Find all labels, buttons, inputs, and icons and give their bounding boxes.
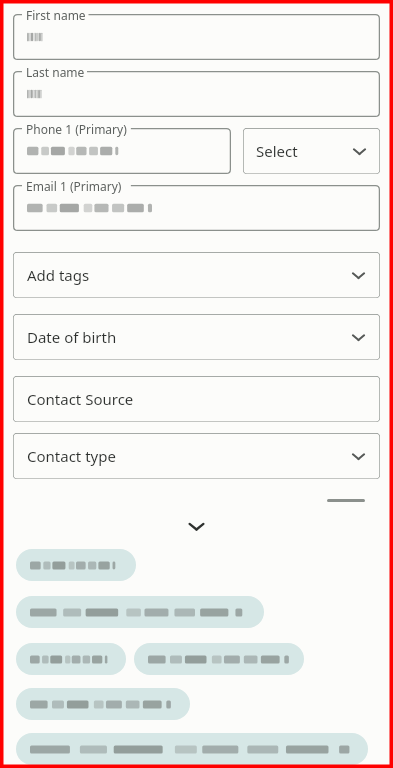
staticText: Date of birth xyxy=(27,327,117,347)
button[interactable]: Email 1 (Primary) xyxy=(13,185,380,231)
staticText: First name xyxy=(26,7,86,23)
button[interactable]: Last name xyxy=(13,71,380,117)
button[interactable]: Expand xyxy=(0,515,393,537)
button[interactable]: Tag xyxy=(16,688,190,720)
button[interactable]: Tag xyxy=(16,733,368,765)
button[interactable]: Tag xyxy=(16,643,126,675)
button[interactable]: Phone 1 (Primary) xyxy=(13,128,231,174)
button[interactable]: Tag xyxy=(134,643,304,675)
staticText: Contact type xyxy=(27,446,116,466)
staticText: Email 1 (Primary) xyxy=(26,178,122,194)
staticText: Last name xyxy=(26,64,85,80)
button[interactable]: Date of birth xyxy=(13,314,380,360)
staticText: Select xyxy=(256,141,298,161)
staticText: Phone 1 (Primary) xyxy=(26,121,127,137)
button[interactable]: First name xyxy=(13,14,380,60)
staticText: Contact Source xyxy=(27,389,134,409)
button[interactable]: Tag xyxy=(16,549,136,581)
button[interactable]: Tag xyxy=(16,596,264,628)
button[interactable]: Select xyxy=(243,128,380,174)
button[interactable]: More xyxy=(327,499,365,502)
button[interactable]: Contact Source xyxy=(13,376,380,422)
staticText: Add tags xyxy=(27,265,90,285)
button[interactable]: Contact type xyxy=(13,433,380,479)
button[interactable]: Add tags xyxy=(13,252,380,298)
